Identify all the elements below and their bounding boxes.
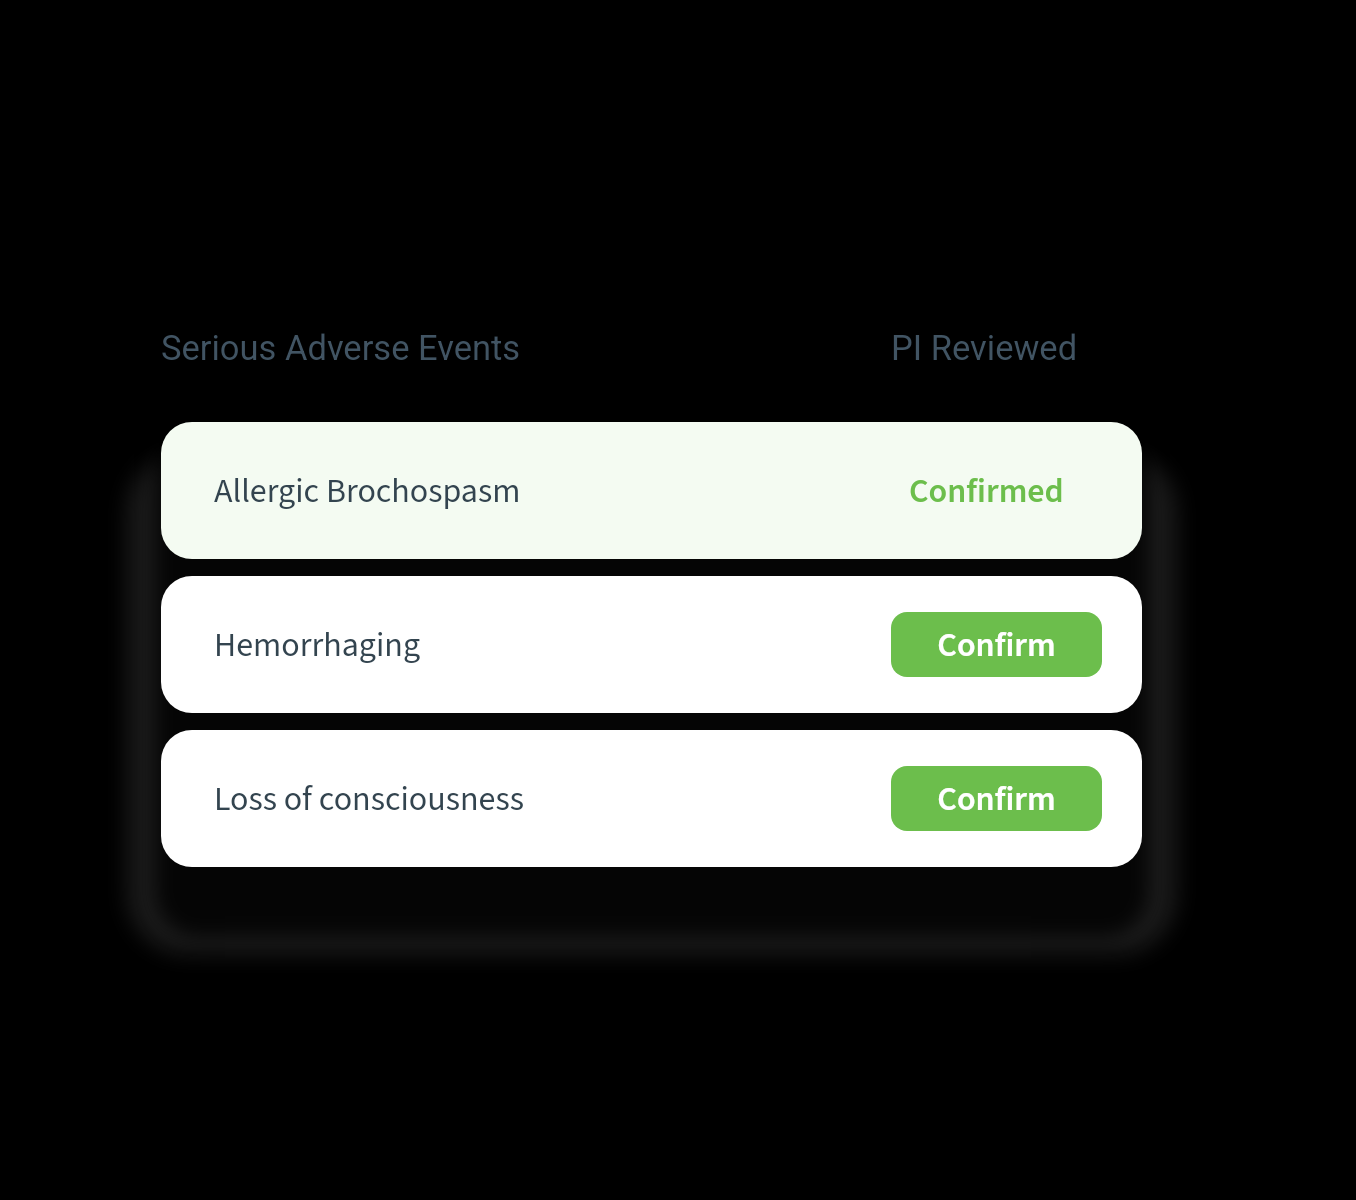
staticText: Loss of consciousness: [214, 775, 524, 823]
button[interactable]: Allergic Brochospasm: [161, 422, 1142, 559]
staticText: PI Reviewed: [891, 328, 1142, 368]
staticText: Serious Adverse Events: [161, 328, 521, 368]
staticText: Confirm: [937, 775, 1056, 823]
button[interactable]: Hemorrhaging: [161, 576, 1142, 713]
staticText: Confirm: [937, 621, 1056, 669]
button[interactable]: Confirm Loss of consciousness: [891, 766, 1102, 831]
button[interactable]: Confirm Hemorrhaging: [891, 612, 1102, 677]
staticText: Confirmed: [909, 467, 1064, 515]
button[interactable]: Loss of consciousness: [161, 730, 1142, 867]
staticText: Allergic Brochospasm: [214, 467, 521, 515]
staticText: Hemorrhaging: [214, 621, 421, 669]
